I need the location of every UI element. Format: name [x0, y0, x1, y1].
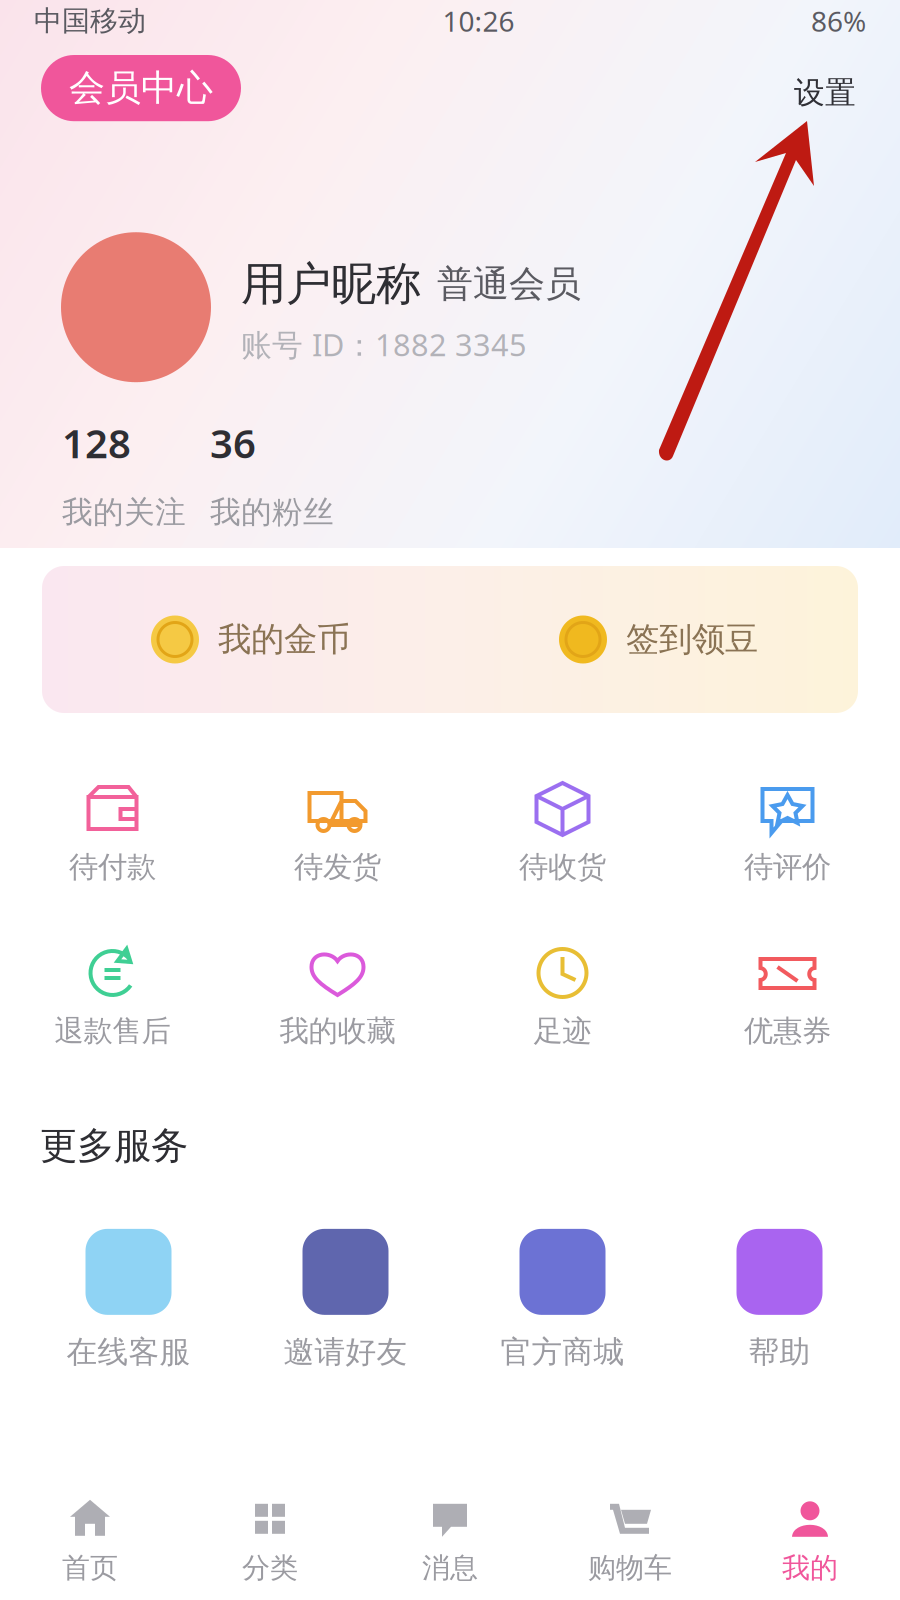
button[interactable]: 待发货 [225, 759, 450, 923]
staticText: 86% [811, 2, 866, 40]
button[interactable]: 优惠券 [675, 923, 900, 1087]
staticText: 我的粉丝 [210, 493, 334, 531]
staticText: 待付款 [69, 849, 156, 885]
button[interactable]: 128 [62, 416, 210, 531]
staticText: 我的收藏 [279, 1013, 395, 1049]
staticText: 会员中心 [69, 66, 213, 110]
staticText: 用户昵称 [241, 256, 421, 312]
staticText: 待收货 [519, 849, 606, 885]
button[interactable]: 36 [210, 416, 358, 531]
staticText: 36 [210, 416, 256, 469]
staticText: 我的 [782, 1551, 838, 1585]
button[interactable]: 待付款 [0, 759, 225, 923]
staticText: 足迹 [533, 1013, 591, 1049]
staticText: 账号 ID：1882 3345 [241, 324, 527, 365]
button[interactable]: 签到领豆 [450, 566, 858, 713]
staticText: 设置 [794, 74, 856, 112]
staticText: 我的金币 [218, 619, 350, 660]
staticText: 首页 [62, 1551, 118, 1585]
button[interactable]: 购物车 [540, 1480, 720, 1600]
button[interactable]: 邀请好友 [237, 1217, 454, 1377]
button[interactable]: 我的金币 [42, 566, 450, 713]
staticText: 购物车 [588, 1551, 672, 1585]
staticText: 128 [62, 416, 131, 469]
staticText: 中国移动 [34, 4, 146, 38]
button[interactable]: 会员中心 [41, 55, 241, 121]
button[interactable]: 我的收藏 [225, 923, 450, 1087]
button[interactable]: 我的 [720, 1480, 900, 1600]
staticText: 在线客服 [66, 1333, 190, 1371]
button[interactable]: 首页 [0, 1480, 180, 1600]
staticText: 待评价 [744, 849, 831, 885]
staticText: 更多服务 [40, 1123, 188, 1169]
staticText: 10:26 [442, 2, 514, 40]
staticText: 消息 [422, 1551, 478, 1585]
button[interactable]: 帮助 [671, 1217, 888, 1377]
staticText: 邀请好友 [283, 1333, 407, 1371]
staticText: 普通会员 [437, 262, 581, 306]
staticText: 分类 [242, 1551, 298, 1585]
staticText: 官方商城 [500, 1333, 624, 1371]
staticText: 待发货 [294, 849, 381, 885]
staticText: 优惠券 [744, 1013, 831, 1049]
button[interactable]: 待评价 [675, 759, 900, 923]
button[interactable]: 分类 [180, 1480, 360, 1600]
button[interactable]: 消息 [360, 1480, 540, 1600]
button[interactable]: 在线客服 [20, 1217, 237, 1377]
button[interactable]: 足迹 [450, 923, 675, 1087]
staticText: 帮助 [748, 1333, 810, 1371]
staticText: 退款售后 [54, 1013, 170, 1049]
button[interactable]: 退款售后 [0, 923, 225, 1087]
staticText: 签到领豆 [626, 619, 758, 660]
button[interactable]: 官方商城 [454, 1217, 671, 1377]
button[interactable]: 待收货 [450, 759, 675, 923]
staticText: 我的关注 [62, 493, 186, 531]
